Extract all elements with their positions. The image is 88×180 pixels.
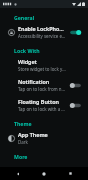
staticText: Tap on to lock from notification xyxy=(18,86,66,92)
staticText: Enable LockPhoneService xyxy=(18,25,66,32)
staticText: Lock With xyxy=(14,47,40,54)
staticText: Theme xyxy=(14,120,32,127)
button[interactable]: Toggle off xyxy=(69,82,82,89)
button[interactable]: Recent apps xyxy=(62,167,78,180)
staticText: General xyxy=(14,14,35,21)
staticText: Widget xyxy=(18,58,37,65)
button[interactable]: Toggle on xyxy=(69,29,82,36)
staticText: Notification xyxy=(18,78,50,85)
button[interactable]: Floating Button xyxy=(0,95,88,115)
staticText: Floating Button xyxy=(18,98,59,105)
staticText: App Theme xyxy=(18,131,48,138)
button[interactable]: Back xyxy=(10,167,26,180)
button[interactable]: Widget xyxy=(0,55,88,75)
button[interactable]: Notification xyxy=(0,75,88,95)
button[interactable]: Toggle off xyxy=(69,102,82,109)
button[interactable]: Home xyxy=(36,167,52,180)
staticText: Store widget to lock your screen xyxy=(18,66,66,72)
staticText: Tap on to lock with a floating button xyxy=(18,106,66,112)
staticText: Accessibility service enabled xyxy=(18,33,66,39)
staticText: More xyxy=(14,153,28,160)
staticText: Dark xyxy=(18,139,28,145)
button[interactable]: Enable LockPhoneService xyxy=(0,22,88,42)
button[interactable]: App Theme xyxy=(0,128,88,148)
